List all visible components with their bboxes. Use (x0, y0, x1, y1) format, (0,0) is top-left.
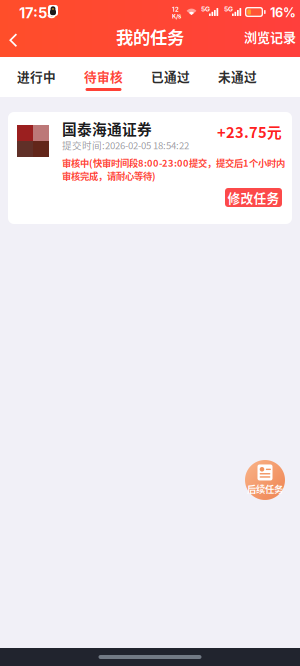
staticText: 16% (270, 5, 296, 20)
button[interactable]: 待审核 (70, 57, 137, 97)
staticText: K/s (172, 13, 181, 20)
staticText: 审核完成，请耐心等待) (62, 169, 156, 182)
staticText: 5G (224, 5, 233, 13)
staticText: 17:53 (19, 4, 56, 22)
button[interactable]: 进行中 (3, 57, 70, 97)
staticText: 未通过 (218, 67, 257, 85)
staticText: 12 (172, 6, 179, 13)
staticText: 修改任务 (227, 188, 279, 207)
button[interactable]: 已通过 (137, 57, 204, 97)
button[interactable]: 后续任务 (245, 460, 285, 500)
staticText: 浏览记录 (244, 27, 296, 46)
button[interactable]: 浏览记录 (235, 20, 300, 53)
staticText: 国泰海通证券 (62, 118, 152, 139)
staticText: 审核中(快审时间段8:00-23:00提交，提交后1个小时内 (62, 156, 285, 169)
staticText: 待审核 (84, 67, 123, 85)
button[interactable]: 返回 (0, 24, 28, 57)
staticText: 我的任务 (116, 24, 184, 49)
staticText: 已通过 (151, 67, 190, 85)
button[interactable]: 未通过 (204, 57, 271, 97)
staticText: 进行中 (17, 67, 56, 85)
staticText: 后续任务 (247, 482, 283, 495)
staticText: +23.75元 (217, 121, 282, 142)
staticText: 5G (201, 5, 210, 13)
button[interactable]: 国泰海通证券 (8, 112, 292, 224)
staticText: 提交时间:2026-02-05 18:54:22 (62, 138, 189, 152)
